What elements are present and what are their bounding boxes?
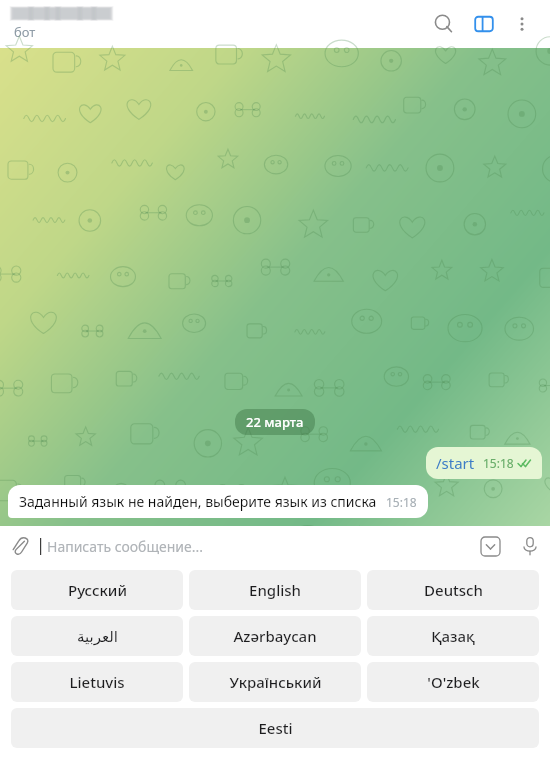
staticText: Написать сообщение... bbox=[47, 537, 203, 556]
button[interactable]: Deutsch bbox=[367, 570, 539, 610]
staticText: 15:18 bbox=[483, 455, 514, 471]
staticText: العربية bbox=[77, 628, 118, 645]
button[interactable]: Toggle side panel bbox=[464, 4, 504, 44]
staticText: Український bbox=[229, 672, 322, 692]
staticText: 15:18 bbox=[386, 494, 417, 510]
button[interactable]: More options bbox=[504, 6, 540, 42]
button[interactable]: English bbox=[189, 570, 361, 610]
staticText: бот bbox=[14, 23, 36, 41]
button[interactable]: Attach bbox=[0, 526, 40, 566]
button[interactable]: Lietuvis bbox=[11, 662, 183, 702]
staticText: Eesti bbox=[258, 718, 293, 738]
staticText: 22 марта bbox=[246, 413, 304, 431]
button[interactable]: Русский bbox=[11, 570, 183, 610]
staticText: Deutsch bbox=[424, 580, 483, 600]
staticText: Lietuvis bbox=[69, 672, 125, 692]
staticText: Azərbaycan bbox=[233, 626, 317, 646]
button[interactable]: Український bbox=[189, 662, 361, 702]
button[interactable]: /start bbox=[426, 447, 542, 479]
button[interactable]: бот bbox=[14, 7, 114, 41]
staticText: Заданный язык не найден, выберите язык и… bbox=[19, 492, 377, 511]
button[interactable]: Қазақ bbox=[367, 616, 539, 656]
button[interactable]: Azərbaycan bbox=[189, 616, 361, 656]
button[interactable]: Emoji bbox=[470, 526, 510, 566]
staticText: Русский bbox=[68, 580, 127, 600]
button[interactable]: العربية bbox=[11, 616, 183, 656]
button[interactable]: Заданный язык не найден, выберите язык и… bbox=[8, 485, 428, 518]
staticText: Қазақ bbox=[431, 626, 475, 646]
staticText: /start bbox=[436, 453, 475, 473]
staticText: 'O'zbek bbox=[427, 672, 480, 692]
button[interactable]: Search bbox=[424, 4, 464, 44]
button[interactable]: Voice message bbox=[510, 526, 550, 566]
staticText: English bbox=[249, 580, 301, 600]
button[interactable]: Eesti bbox=[11, 708, 539, 748]
button[interactable]: 'O'zbek bbox=[367, 662, 539, 702]
